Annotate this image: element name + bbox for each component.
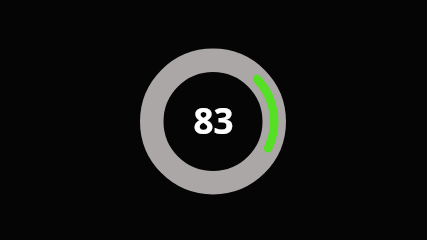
button[interactable]: Fitness progress 83 <box>0 0 427 240</box>
staticText: 83 <box>193 97 234 145</box>
